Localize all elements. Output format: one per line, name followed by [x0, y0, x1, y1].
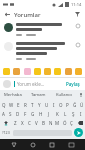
button[interactable]: Emoji: [34, 68, 41, 75]
button[interactable]: O: [57, 100, 64, 109]
staticText: K: [56, 111, 59, 117]
staticText: Ü: [80, 102, 84, 108]
button[interactable]: N: [47, 118, 54, 127]
button[interactable]: G: [29, 109, 37, 118]
button[interactable]: Home: [28, 140, 38, 150]
button[interactable]: [3, 80, 11, 88]
button[interactable]: V: [33, 118, 40, 127]
staticText: Q: [2, 102, 6, 108]
staticText: O: [59, 102, 63, 108]
button[interactable]: Tamam: [25, 90, 51, 99]
button[interactable]: Back: [9, 140, 19, 150]
button[interactable]: Emoji: [65, 68, 72, 75]
staticText: V: [35, 120, 38, 126]
button[interactable]: I: [77, 109, 85, 118]
staticText: U: [45, 102, 49, 108]
staticText: Yorum ekle...: [17, 81, 45, 87]
button[interactable]: F: [21, 109, 29, 118]
button[interactable]: Emoji: [24, 68, 31, 75]
button[interactable]: Filter: [73, 10, 82, 19]
button[interactable]: Emoji: [44, 68, 51, 75]
button[interactable]: A: [0, 109, 7, 118]
button[interactable]: D: [14, 109, 21, 118]
button[interactable]: Yorum ekle...: [17, 81, 64, 87]
button[interactable]: H: [37, 109, 45, 118]
staticText: L: [64, 111, 67, 117]
button[interactable]: E: [15, 100, 22, 109]
button[interactable]: Merhaba: [0, 90, 25, 99]
button[interactable]: Y: [36, 100, 43, 109]
staticText: B: [42, 120, 45, 126]
staticText: H: [39, 111, 43, 117]
staticText: I: [53, 102, 55, 108]
button[interactable]: K: [53, 109, 61, 118]
button[interactable]: B: [40, 118, 47, 127]
button[interactable]: Z: [11, 118, 19, 127]
button[interactable]: I: [50, 100, 57, 109]
button[interactable]: [4, 42, 13, 51]
staticText: M: [55, 120, 60, 126]
button[interactable]: Emoji: [75, 68, 82, 75]
button[interactable]: Keyboard: [66, 140, 76, 150]
staticText: Y: [38, 102, 41, 108]
staticText: Ş: [72, 111, 75, 117]
staticText: C: [28, 120, 31, 126]
button[interactable]: J: [45, 109, 53, 118]
staticText: Tamam: [31, 92, 46, 98]
staticText: 11:14: [71, 2, 82, 7]
button[interactable]: R: [22, 100, 29, 109]
staticText: G: [31, 111, 35, 117]
button[interactable]: W: [8, 100, 15, 109]
button[interactable]: ?123: [1, 127, 11, 138]
button[interactable]: Ş: [69, 109, 77, 118]
staticText: R: [24, 102, 27, 108]
button[interactable]: Emoji: [3, 68, 10, 75]
button[interactable]: Send: [74, 128, 83, 137]
button[interactable]: S: [7, 109, 14, 118]
button[interactable]: Ğ: [71, 100, 78, 109]
button[interactable]: X: [19, 118, 26, 127]
staticText: I: [80, 111, 82, 117]
staticText: Kullanıcı: [56, 92, 73, 98]
button[interactable]: Recents: [47, 140, 57, 150]
staticText: A: [2, 111, 5, 117]
button[interactable]: Kullanıcı: [51, 90, 77, 99]
staticText: X: [21, 120, 24, 126]
button[interactable]: Like: [75, 42, 81, 48]
button[interactable]: Paylaş: [64, 81, 82, 87]
button[interactable]: Shift: [0, 118, 11, 127]
button[interactable]: U: [43, 100, 50, 109]
staticText: D: [16, 111, 20, 117]
button[interactable]: Q: [0, 100, 8, 109]
staticText: Ö: [63, 120, 67, 126]
button[interactable]: Ü: [78, 100, 85, 109]
staticText: P: [66, 102, 69, 108]
button[interactable]: P: [64, 100, 71, 109]
button[interactable]: [4, 23, 13, 32]
button[interactable]: T: [29, 100, 36, 109]
button[interactable]: Backspace: [75, 118, 85, 127]
button[interactable]: M: [54, 118, 61, 127]
staticText: Merhaba: [4, 92, 22, 98]
staticText: S: [9, 111, 12, 117]
button[interactable]: Ç: [68, 118, 75, 127]
staticText: Yorumlar: [14, 11, 41, 19]
button[interactable]: Back: [3, 10, 12, 19]
staticText: Ç: [70, 120, 73, 126]
staticText: J: [48, 111, 50, 117]
staticText: E: [17, 102, 20, 108]
button[interactable]: C: [26, 118, 33, 127]
staticText: Z: [14, 120, 17, 126]
staticText: N: [49, 120, 53, 126]
button[interactable]: L: [61, 109, 69, 118]
staticText: T: [31, 102, 34, 108]
button[interactable]: Voice input: [77, 90, 85, 99]
button[interactable]: Emoji: [54, 68, 61, 75]
button[interactable]: Ö: [61, 118, 68, 127]
staticText: W: [9, 102, 14, 108]
button[interactable]: Like: [75, 23, 81, 29]
staticText: F: [24, 111, 27, 117]
staticText: ?123: [2, 130, 10, 135]
button[interactable]: Emoji: [13, 68, 20, 75]
